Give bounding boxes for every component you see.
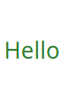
staticText: Hello (4, 35, 60, 65)
